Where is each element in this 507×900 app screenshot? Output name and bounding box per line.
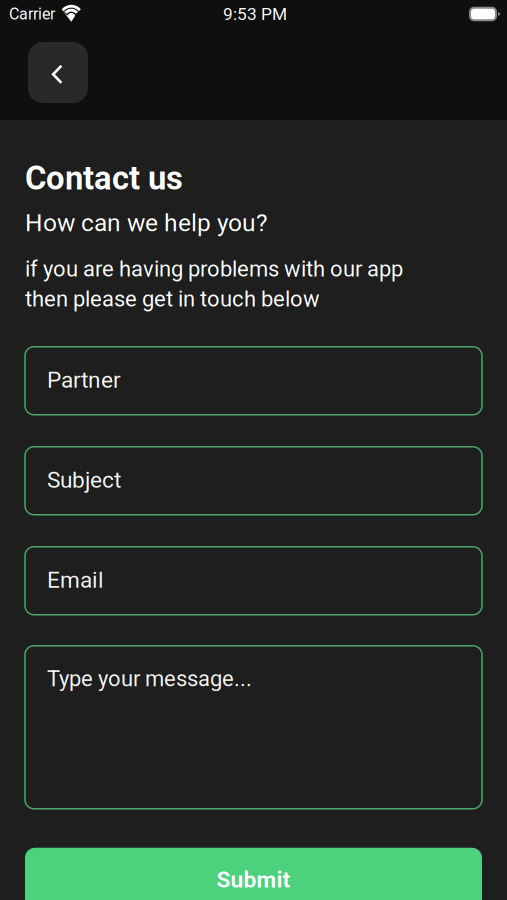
staticText: Email (47, 567, 104, 593)
button[interactable]: Back (28, 42, 88, 103)
button[interactable]: Email (25, 547, 482, 615)
staticText: if you are having problems with our app (25, 256, 403, 282)
button[interactable]: Subject (25, 447, 482, 515)
staticText: How can we help you? (25, 208, 268, 237)
staticText: Subject (47, 467, 121, 493)
button[interactable]: Partner (25, 347, 482, 415)
staticText: 9:53 PM (223, 4, 287, 24)
staticText: Submit (216, 866, 290, 893)
staticText: Type your message... (47, 666, 252, 692)
button[interactable]: Type your message... (25, 646, 482, 809)
staticText: Carrier (9, 5, 55, 23)
staticText: Partner (47, 367, 121, 393)
staticText: then please get in touch below (25, 286, 320, 312)
button[interactable]: Submit (25, 848, 482, 900)
staticText: Contact us (25, 159, 183, 197)
